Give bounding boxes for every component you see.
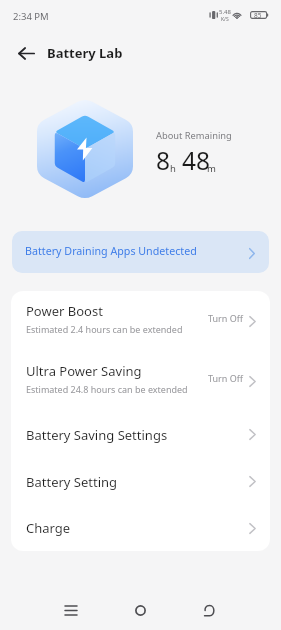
staticText: Battery Lab: [47, 44, 123, 62]
staticText: Battery Saving Settings: [26, 426, 249, 444]
staticText: About Remaining: [156, 129, 232, 142]
staticText: Battery Draining Apps Undetected: [25, 244, 197, 259]
staticText: h: [170, 162, 176, 175]
button[interactable]: Recent apps: [49, 588, 93, 630]
button[interactable]: Battery Saving Settings: [11, 411, 270, 458]
button[interactable]: Ultra Power Saving: [11, 351, 270, 411]
staticText: 8: [156, 144, 171, 177]
staticText: Turn Off: [208, 312, 243, 324]
staticText: Ultra Power Saving: [26, 362, 142, 380]
staticText: 5.48: [219, 8, 231, 16]
staticText: Battery Setting: [26, 473, 249, 491]
button[interactable]: Back: [187, 588, 231, 630]
staticText: Charge: [26, 519, 249, 537]
button[interactable]: Back: [4, 31, 48, 75]
staticText: K/S: [221, 16, 229, 23]
staticText: Estimated 24.8 hours can be extended: [26, 383, 188, 395]
staticText: m: [207, 162, 216, 175]
staticText: 48: [182, 144, 211, 177]
button[interactable]: Power Boost: [11, 291, 270, 351]
button[interactable]: Battery Setting: [11, 458, 270, 505]
button[interactable]: Battery Draining Apps Undetected: [12, 231, 269, 273]
staticText: 85: [254, 11, 262, 19]
staticText: 2:34 PM: [13, 10, 49, 23]
button[interactable]: Home: [118, 588, 162, 630]
button[interactable]: Charge: [11, 505, 270, 551]
staticText: Estimated 2.4 hours can be extended: [26, 323, 183, 335]
staticText: Turn Off: [208, 372, 243, 384]
staticText: Power Boost: [26, 302, 103, 320]
